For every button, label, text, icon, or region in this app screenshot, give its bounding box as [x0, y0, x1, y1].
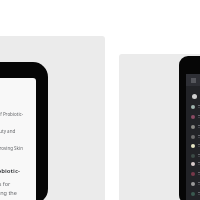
button[interactable] — [186, 169, 200, 178]
button[interactable]: Library — [190, 77, 197, 84]
button[interactable] — [186, 151, 200, 160]
button[interactable]: Profile — [186, 91, 200, 101]
button[interactable] — [186, 112, 200, 121]
staticText: The Power of Probiotic- — [0, 111, 24, 117]
button[interactable] — [186, 141, 200, 150]
button[interactable] — [186, 189, 200, 198]
staticText: Top 5 Probiotic- — [0, 167, 20, 175]
button[interactable] — [186, 179, 200, 188]
staticText: Infused Beauty and — [0, 128, 16, 134]
button[interactable] — [186, 132, 200, 141]
staticText: emphasizing the — [0, 189, 17, 196]
staticText: Useful tips for — [0, 180, 11, 187]
staticText: Tips for Improving Skin — [0, 145, 23, 151]
button[interactable] — [186, 102, 200, 111]
button[interactable] — [186, 159, 200, 168]
button[interactable] — [186, 122, 200, 131]
